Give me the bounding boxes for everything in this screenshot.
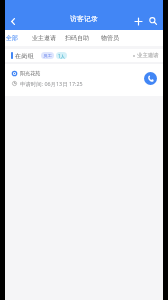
staticText: 全部 [6,34,18,42]
button[interactable]: Back [5,13,21,29]
button[interactable]: Call [144,72,157,85]
button[interactable]: 在岗组 [5,49,163,96]
staticText: 业主邀请 [137,52,159,59]
staticText: 扫码自助 [65,34,89,42]
button[interactable]: Add [129,12,147,30]
staticText: 业主邀请 [32,34,56,42]
staticText: 申请时间: 06月13日 17:25 [20,80,83,87]
staticText: 在岗组 [15,52,34,60]
button[interactable]: 全部 [1,30,23,46]
staticText: 员工 [43,53,52,59]
staticText: 阳光花苑 [20,70,41,76]
button[interactable]: 扫码自助 [60,30,94,46]
button[interactable]: 物管员 [96,30,124,46]
button[interactable]: 业主邀请 [27,30,61,46]
staticText: 1人 [58,53,65,59]
staticText: 物管员 [101,34,119,42]
staticText: 访客记录 [70,14,98,23]
button[interactable]: Search [144,12,162,30]
